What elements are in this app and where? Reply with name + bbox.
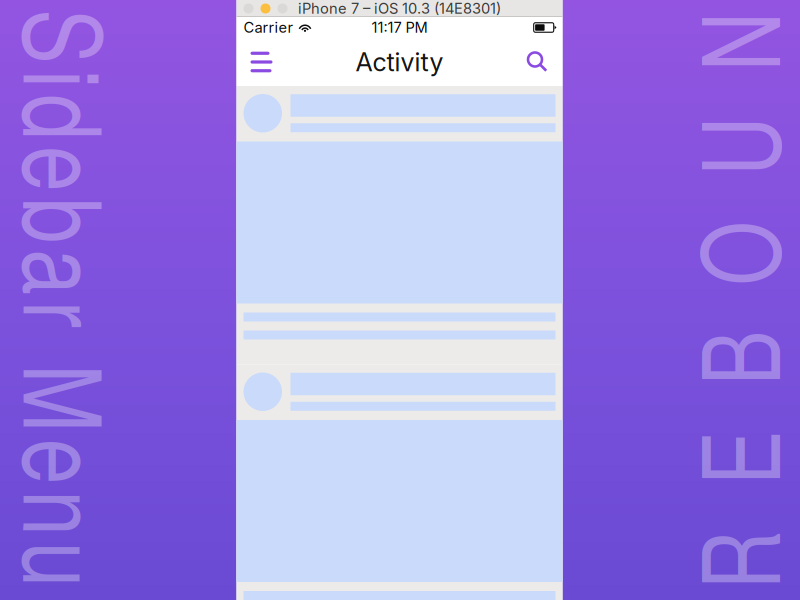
staticText: iPhone 7 – iOS 10.3 (14E8301) (298, 0, 501, 17)
button[interactable]: Search (515, 40, 559, 84)
staticText: Activity (355, 47, 443, 77)
staticText: Sidebar Menu (146, 9, 800, 162)
staticText: 11:17 PM (371, 19, 427, 36)
button[interactable]: Menu (239, 40, 283, 84)
staticText: Carrier (243, 19, 293, 36)
